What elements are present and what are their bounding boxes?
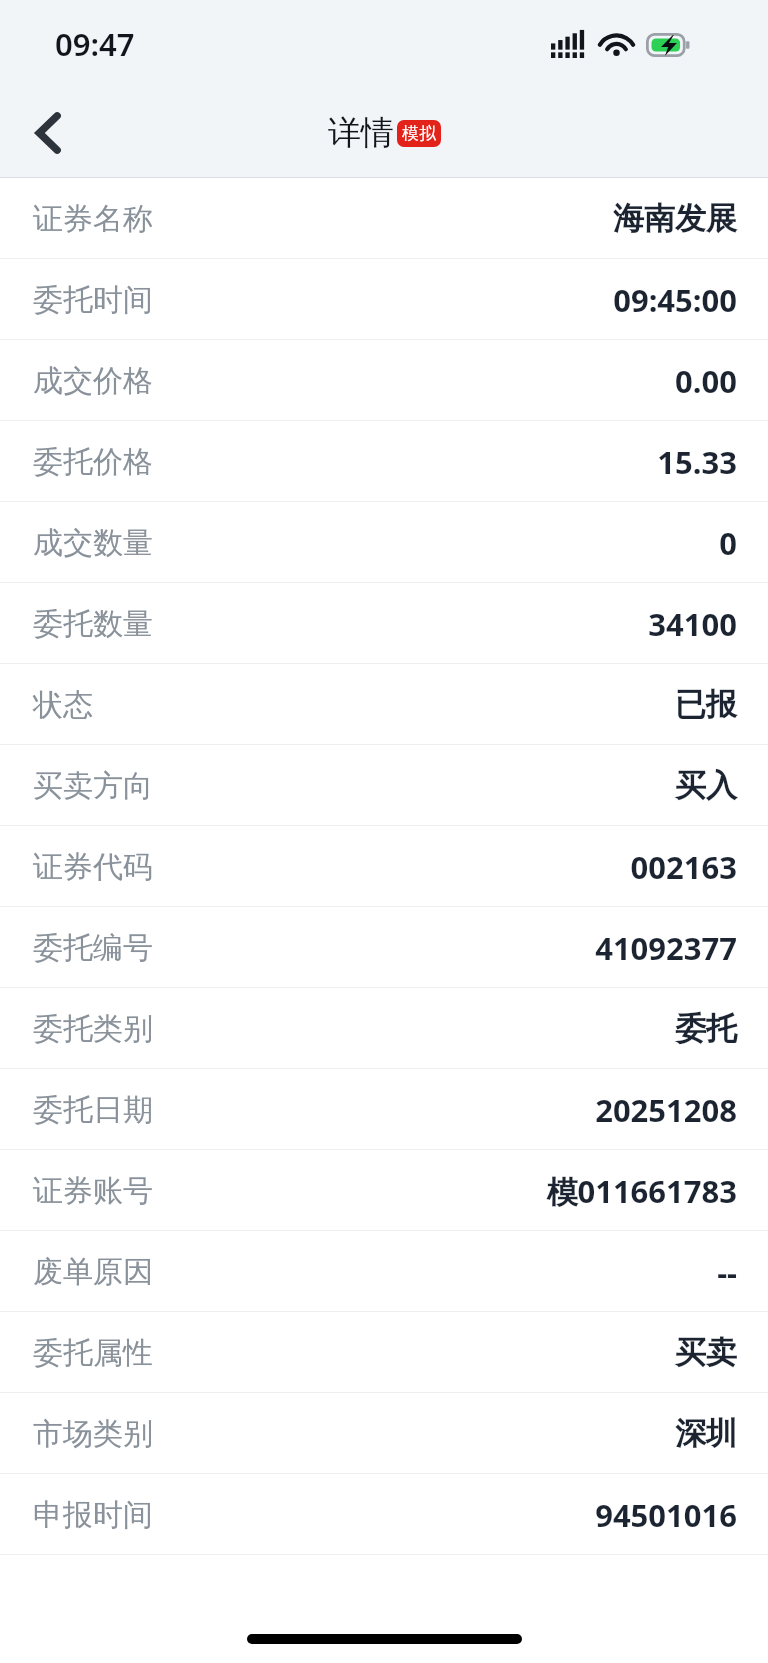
- staticText: 委托: [675, 1009, 737, 1048]
- staticText: 深圳: [675, 1414, 737, 1453]
- button[interactable]: 委托编号: [0, 907, 768, 988]
- staticText: 34100: [648, 603, 737, 645]
- staticText: 09:47: [55, 23, 135, 65]
- button[interactable]: 委托时间: [0, 259, 768, 340]
- staticText: 002163: [630, 846, 737, 888]
- button[interactable]: 委托数量: [0, 583, 768, 664]
- staticText: 市场类别: [33, 1415, 153, 1453]
- staticText: 详情: [328, 112, 394, 154]
- staticText: 买入: [675, 766, 737, 805]
- staticText: 委托编号: [33, 929, 153, 967]
- button[interactable]: 委托日期: [0, 1069, 768, 1150]
- staticText: 买卖方向: [33, 767, 153, 805]
- staticText: 委托日期: [33, 1091, 153, 1129]
- staticText: 94501016: [595, 1494, 737, 1536]
- button[interactable]: 委托类别: [0, 988, 768, 1069]
- staticText: 证券名称: [33, 200, 153, 238]
- button[interactable]: Back: [0, 88, 96, 177]
- staticText: 委托属性: [33, 1334, 153, 1372]
- staticText: 已报: [675, 685, 737, 724]
- button[interactable]: 市场类别: [0, 1393, 768, 1474]
- button[interactable]: 证券名称: [0, 178, 768, 259]
- staticText: 委托数量: [33, 605, 153, 643]
- staticText: 09:45:00: [613, 279, 737, 321]
- staticText: 模拟: [402, 123, 436, 144]
- staticText: 状态: [33, 686, 93, 724]
- button[interactable]: 废单原因: [0, 1231, 768, 1312]
- button[interactable]: 买卖方向: [0, 745, 768, 826]
- staticText: 成交数量: [33, 524, 153, 562]
- button[interactable]: 委托属性: [0, 1312, 768, 1393]
- staticText: 买卖: [675, 1333, 737, 1372]
- button[interactable]: 状态: [0, 664, 768, 745]
- staticText: 证券代码: [33, 848, 153, 886]
- button[interactable]: 成交数量: [0, 502, 768, 583]
- staticText: 15.33: [657, 441, 737, 483]
- staticText: 模011661783: [546, 1170, 737, 1212]
- staticText: 0.00: [675, 360, 737, 402]
- staticText: 委托类别: [33, 1010, 153, 1048]
- staticText: 申报时间: [33, 1496, 153, 1534]
- staticText: 证券账号: [33, 1172, 153, 1210]
- button[interactable]: 证券代码: [0, 826, 768, 907]
- staticText: 废单原因: [33, 1253, 153, 1291]
- staticText: 委托时间: [33, 281, 153, 319]
- staticText: 20251208: [595, 1089, 737, 1131]
- staticText: 0: [719, 522, 737, 564]
- staticText: 成交价格: [33, 362, 153, 400]
- staticText: 委托价格: [33, 443, 153, 481]
- staticText: 41092377: [595, 927, 737, 969]
- button[interactable]: 委托价格: [0, 421, 768, 502]
- button[interactable]: 成交价格: [0, 340, 768, 421]
- button[interactable]: 证券账号: [0, 1150, 768, 1231]
- button[interactable]: 申报时间: [0, 1474, 768, 1555]
- staticText: 海南发展: [613, 199, 737, 238]
- staticText: --: [717, 1251, 737, 1293]
